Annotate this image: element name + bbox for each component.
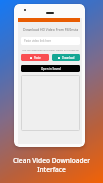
staticText: Open in Saved [41,67,61,71]
staticText: Paste [34,56,41,60]
staticText: Paste video link here [24,39,52,43]
button[interactable]: Open in Saved [21,65,80,72]
button[interactable]: Paste video link here [21,37,80,45]
staticText: Download [62,56,75,60]
button[interactable]: Paste [21,54,49,61]
staticText: You can download only public videos on I… [21,48,80,51]
staticText: Download HD Video From FB/Insta [21,27,80,32]
button[interactable]: Download [52,54,80,61]
staticText: Clean Video Downloader Interface [0,156,103,174]
